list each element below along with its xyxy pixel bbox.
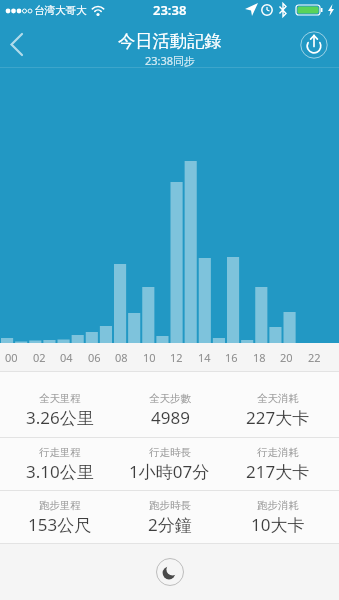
button[interactable] xyxy=(0,26,34,62)
staticText: 217大卡 xyxy=(246,460,310,483)
staticText: 153公尺 xyxy=(28,513,92,536)
staticText: 23:38同步 xyxy=(145,53,196,68)
staticText: 08 xyxy=(115,350,128,365)
staticText: 全天里程 xyxy=(39,392,81,405)
staticText: 1小時07分 xyxy=(129,460,210,483)
button[interactable]: 行走時長 xyxy=(113,438,226,490)
button[interactable]: 行走消耗 xyxy=(226,438,339,490)
staticText: 12 xyxy=(170,350,183,365)
staticText: 23:38 xyxy=(153,1,187,19)
button[interactable]: 全天步數 xyxy=(113,372,226,437)
button[interactable] xyxy=(300,31,328,59)
staticText: 跑步時長 xyxy=(149,499,191,512)
staticText: 跑步里程 xyxy=(39,499,81,512)
staticText: 02 xyxy=(33,350,46,365)
staticText: 3.10公里 xyxy=(26,460,94,483)
staticText: 行走消耗 xyxy=(257,446,299,459)
staticText: 行走里程 xyxy=(39,446,81,459)
staticText: 行走時長 xyxy=(149,446,191,459)
staticText: 18 xyxy=(253,350,266,365)
staticText: 台湾大哥大 xyxy=(34,4,87,17)
staticText: 20 xyxy=(280,350,293,365)
staticText: 00 xyxy=(5,350,18,365)
button[interactable] xyxy=(156,558,184,586)
staticText: 3.26公里 xyxy=(26,406,94,429)
staticText: 06 xyxy=(88,350,101,365)
button[interactable]: 跑步時長 xyxy=(113,491,226,543)
staticText: 16 xyxy=(225,350,238,365)
button[interactable]: 跑步消耗 xyxy=(226,491,339,543)
button[interactable]: 全天消耗 xyxy=(226,372,339,437)
staticText: 4989 xyxy=(151,406,190,429)
staticText: 04 xyxy=(60,350,73,365)
staticText: 227大卡 xyxy=(246,406,310,429)
staticText: 14 xyxy=(198,350,211,365)
button[interactable]: 全天里程 xyxy=(0,372,113,437)
staticText: 今日活動記錄 xyxy=(118,30,222,52)
button[interactable]: 行走里程 xyxy=(0,438,113,490)
staticText: 跑步消耗 xyxy=(257,499,299,512)
staticText: 10大卡 xyxy=(251,513,305,536)
button[interactable]: 跑步里程 xyxy=(0,491,113,543)
staticText: 10 xyxy=(143,350,156,365)
staticText: 全天消耗 xyxy=(257,392,299,405)
staticText: 全天步數 xyxy=(149,392,191,405)
staticText: 22 xyxy=(308,350,321,365)
staticText: 2分鐘 xyxy=(148,513,192,536)
